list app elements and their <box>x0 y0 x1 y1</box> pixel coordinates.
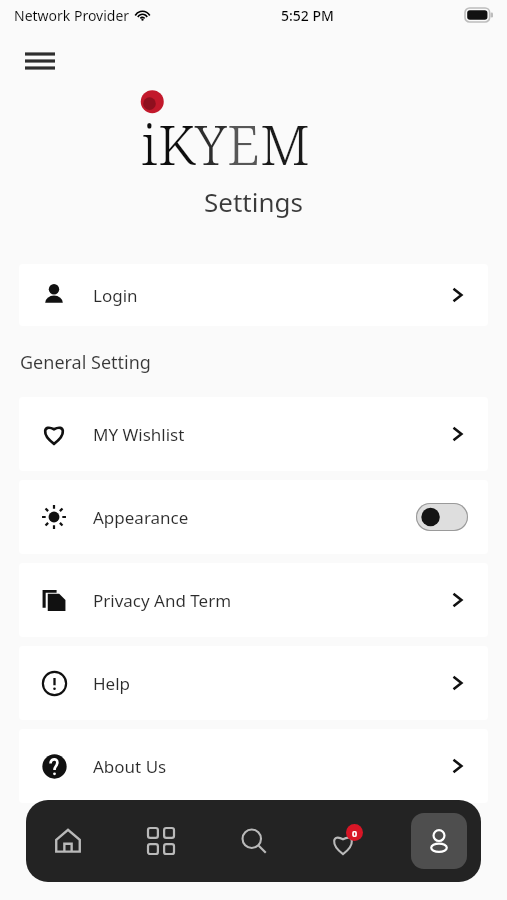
staticText: 0 <box>352 827 358 839</box>
button[interactable]: Wishlist <box>318 813 374 869</box>
staticText: M <box>260 107 310 181</box>
staticText: i <box>141 107 158 181</box>
staticText: MY Wishlist <box>93 423 185 446</box>
staticText: E <box>227 107 260 181</box>
staticText: K <box>158 107 195 181</box>
staticText: 5:52 PM <box>281 6 334 25</box>
staticText: About Us <box>93 755 167 778</box>
button[interactable]: Profile <box>411 813 467 869</box>
button[interactable]: Categories <box>133 813 189 869</box>
button[interactable]: Privacy And Term <box>19 563 488 637</box>
staticText: General Setting <box>20 350 151 375</box>
button[interactable]: Appearance toggle <box>416 503 468 531</box>
staticText: Help <box>93 672 131 695</box>
staticText: Settings <box>204 184 303 219</box>
staticText: Y <box>195 107 227 181</box>
button[interactable]: Search <box>226 813 282 869</box>
button[interactable]: Appearance <box>19 480 488 554</box>
staticText: Login <box>93 284 138 307</box>
staticText: Privacy And Term <box>93 589 232 612</box>
staticText: Network Provider <box>14 6 130 25</box>
staticText: Appearance <box>93 506 189 529</box>
button[interactable]: Home <box>40 813 96 869</box>
button[interactable]: Menu <box>18 40 62 84</box>
button[interactable]: MY Wishlist <box>19 397 488 471</box>
button[interactable]: About Us <box>19 729 488 803</box>
button[interactable]: Login <box>19 264 488 326</box>
button[interactable]: Help <box>19 646 488 720</box>
